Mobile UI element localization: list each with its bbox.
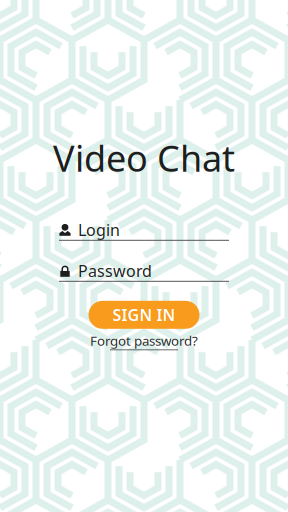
button[interactable]: Password [59,264,229,282]
staticText: Forgot password? [90,332,198,349]
staticText: Video Chat [53,134,235,182]
button[interactable]: Forgot password? [90,332,198,350]
staticText: Password [78,260,152,281]
button[interactable]: SIGN IN [88,301,199,329]
staticText: Login [78,219,120,240]
button[interactable]: Login [59,223,229,241]
staticText: SIGN IN [112,304,175,325]
